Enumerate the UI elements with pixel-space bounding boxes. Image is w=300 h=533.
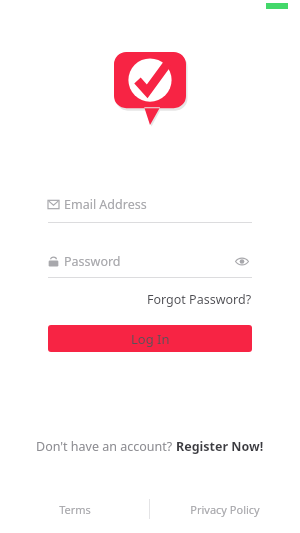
button[interactable]: Log In (48, 325, 252, 352)
staticText: Email Address (64, 196, 147, 213)
button[interactable]: Forgot Password? (147, 291, 252, 308)
button[interactable]: Show password (232, 251, 252, 271)
staticText: Don't have an account? (36, 438, 176, 455)
button[interactable]: Password (48, 251, 252, 278)
staticText: Log In (131, 330, 170, 348)
button[interactable]: Email Address (48, 196, 252, 223)
staticText: Password (64, 253, 121, 270)
button[interactable]: Terms (0, 502, 149, 517)
staticText: Register Now! (176, 438, 264, 455)
staticText: Privacy Policy (190, 502, 260, 517)
button[interactable]: Register Now! (176, 438, 264, 455)
staticText: Forgot Password? (147, 291, 252, 308)
button[interactable]: Privacy Policy (150, 502, 300, 517)
staticText: Terms (59, 502, 91, 517)
